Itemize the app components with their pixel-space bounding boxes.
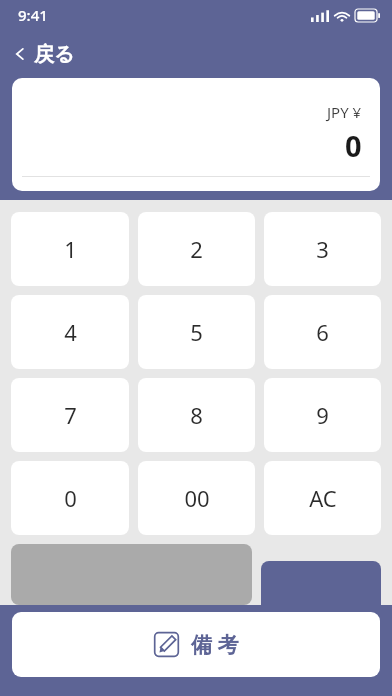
staticText: JPY ¥: [327, 102, 362, 122]
button[interactable]: 00: [138, 461, 255, 535]
other: Remarks: [153, 631, 180, 658]
staticText: 備 考: [191, 630, 239, 659]
button[interactable]: 5: [138, 295, 255, 369]
staticText: 8: [190, 400, 203, 430]
staticText: 4: [64, 317, 77, 347]
button[interactable]: 6: [264, 295, 381, 369]
button[interactable]: JPY ¥: [12, 78, 380, 191]
staticText: 戻る: [34, 42, 75, 67]
button[interactable]: 4: [11, 295, 129, 369]
button[interactable]: [261, 561, 381, 622]
button[interactable]: 7: [11, 378, 129, 452]
staticText: 5: [190, 317, 203, 347]
button[interactable]: 3: [264, 212, 381, 286]
staticText: 2: [190, 234, 203, 264]
button[interactable]: AC: [264, 461, 381, 535]
staticText: 0: [345, 126, 362, 165]
button[interactable]: Remarks: [12, 612, 380, 677]
button[interactable]: 2: [138, 212, 255, 286]
button[interactable]: 8: [138, 378, 255, 452]
staticText: 3: [316, 234, 329, 264]
staticText: 1: [64, 234, 77, 264]
staticText: 9:41: [18, 5, 48, 25]
button[interactable]: 1: [11, 212, 129, 286]
staticText: AC: [309, 483, 337, 513]
staticText: 00: [184, 483, 210, 513]
button[interactable]: [11, 544, 252, 605]
button[interactable]: 0: [11, 461, 129, 535]
button[interactable]: 9: [264, 378, 381, 452]
staticText: 9: [316, 400, 329, 430]
staticText: 7: [64, 400, 77, 430]
staticText: 0: [64, 483, 77, 513]
staticText: 6: [316, 317, 329, 347]
button[interactable]: 戻る: [0, 30, 392, 78]
